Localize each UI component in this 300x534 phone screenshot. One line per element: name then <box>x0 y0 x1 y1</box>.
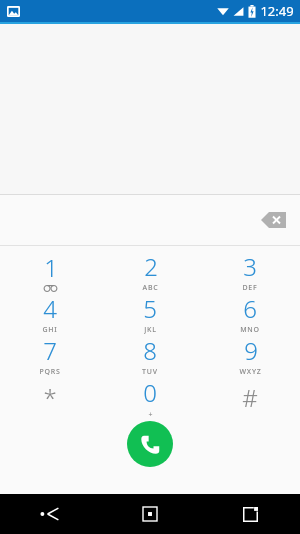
staticText: GHI <box>42 325 58 334</box>
staticText: WXYZ <box>239 367 262 376</box>
button[interactable]: 9 <box>200 334 300 376</box>
staticText: 4 <box>43 292 57 325</box>
button[interactable]: 0 <box>100 376 200 418</box>
button[interactable]: Backspace <box>254 205 292 235</box>
staticText: 0 <box>143 376 157 409</box>
button[interactable]: 4 <box>0 292 100 334</box>
staticText: 8 <box>143 334 157 367</box>
staticText: 2 <box>144 250 158 283</box>
staticText: 3 <box>243 250 257 283</box>
button[interactable]: 6 <box>200 292 300 334</box>
button[interactable]: 8 <box>100 334 200 376</box>
button[interactable]: Recent apps <box>200 494 300 534</box>
staticText: * <box>43 381 57 414</box>
button[interactable]: # <box>200 376 300 418</box>
staticText: TUV <box>142 367 158 376</box>
staticText: ABC <box>142 283 159 292</box>
button[interactable]: Call <box>127 421 173 467</box>
staticText: # <box>242 381 258 414</box>
staticText: 5 <box>143 292 157 325</box>
staticText: 1 <box>44 251 58 284</box>
button[interactable]: 5 <box>100 292 200 334</box>
staticText: JKL <box>144 325 157 334</box>
staticText: PQRS <box>39 367 61 376</box>
staticText: 9 <box>244 334 258 367</box>
button[interactable]: 1 <box>0 250 100 292</box>
button[interactable]: Back <box>0 494 100 534</box>
staticText: 12:49 <box>260 2 294 20</box>
staticText: 7 <box>43 334 57 367</box>
button[interactable]: 7 <box>0 334 100 376</box>
button[interactable]: 2 <box>100 250 200 292</box>
staticText: + <box>148 410 153 418</box>
staticText: MNO <box>240 325 260 334</box>
button[interactable]: 3 <box>200 250 300 292</box>
button[interactable]: Home <box>100 494 200 534</box>
staticText: DEF <box>242 283 258 292</box>
staticText: 6 <box>243 292 257 325</box>
button[interactable]: * <box>0 376 100 418</box>
